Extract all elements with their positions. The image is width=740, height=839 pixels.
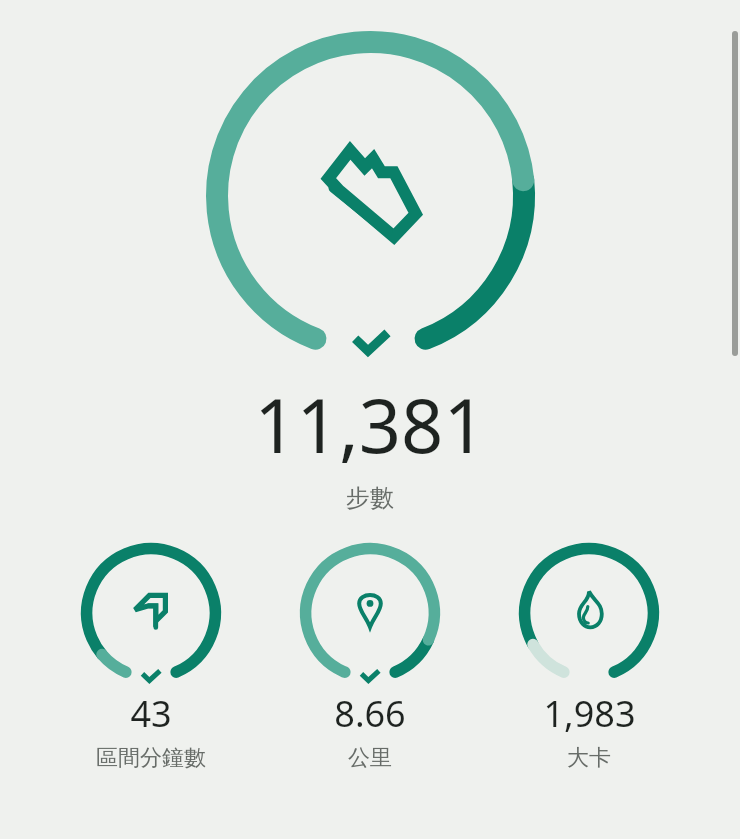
button[interactable]: Calories	[519, 543, 659, 772]
staticText: 43	[130, 689, 172, 738]
staticText: 8.66	[334, 689, 406, 738]
staticText: 11,381	[254, 374, 486, 475]
staticText: 步數	[346, 483, 394, 513]
staticText: 1,983	[543, 689, 636, 738]
button[interactable]: Heart points	[81, 543, 221, 772]
staticText: 大卡	[567, 744, 611, 772]
staticText: 區間分鐘數	[96, 744, 206, 772]
button[interactable]: Steps ring	[206, 31, 535, 360]
staticText: 公里	[348, 744, 392, 772]
button[interactable]: Distance	[300, 543, 440, 772]
